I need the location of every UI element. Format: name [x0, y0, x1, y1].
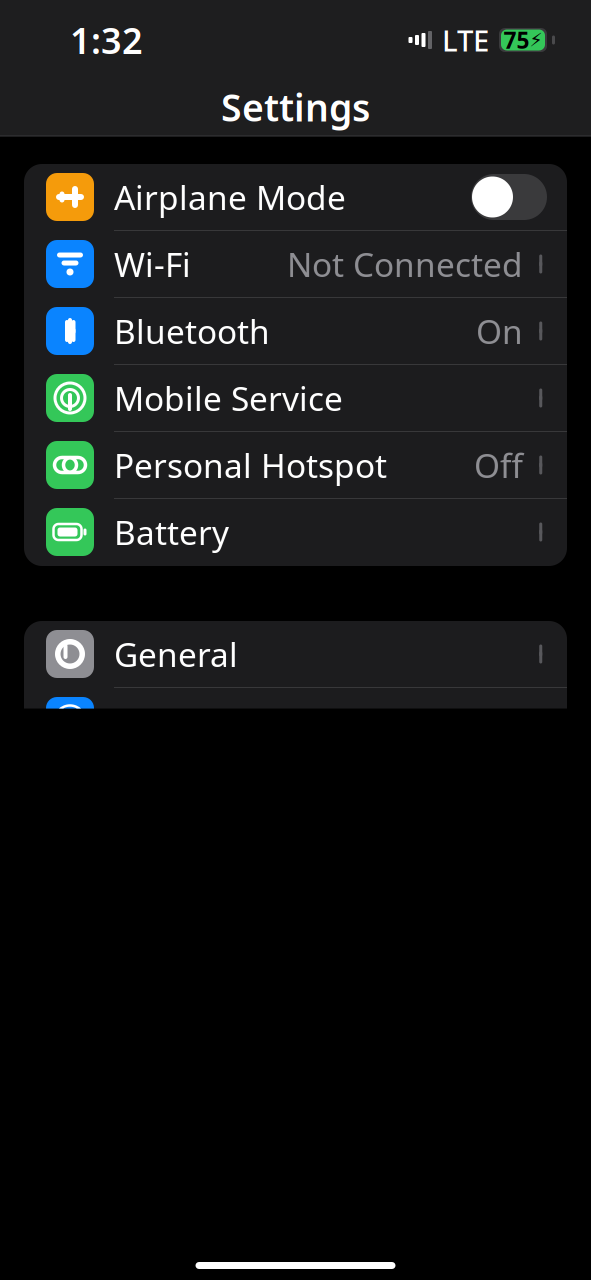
- staticText: LTE: [442, 20, 489, 59]
- button[interactable]: Wallpaper: [24, 1224, 567, 1280]
- staticText: Bluetooth: [114, 309, 270, 353]
- staticText: Off: [474, 443, 523, 487]
- staticText: Mobile Service: [114, 376, 343, 420]
- button[interactable]: Airplane Mode: [24, 164, 567, 231]
- button[interactable]: Personal Hotspot: [24, 432, 567, 499]
- button[interactable]: Wi-Fi: [24, 231, 567, 298]
- staticText: Airplane Mode: [114, 175, 346, 219]
- staticText: General: [114, 632, 238, 676]
- button[interactable]: Mobile Service: [24, 365, 567, 432]
- staticText: Wi-Fi: [114, 242, 191, 286]
- staticText: 1:32: [70, 16, 143, 64]
- staticText: Accessibility: [114, 699, 304, 743]
- staticText: On: [476, 309, 523, 353]
- button[interactable]: Accessibility: [24, 688, 567, 755]
- staticText: Wallpaper: [114, 1235, 275, 1279]
- staticText: Personal Hotspot: [114, 443, 387, 487]
- button[interactable]: Airplane Mode: [471, 174, 547, 220]
- staticText: 75: [503, 25, 529, 55]
- button[interactable]: Battery: [24, 499, 567, 566]
- staticText: Settings: [221, 82, 370, 132]
- staticText: Battery: [114, 510, 229, 554]
- button[interactable]: General: [24, 621, 567, 688]
- staticText: Not Connected: [287, 242, 523, 286]
- button[interactable]: Bluetooth: [24, 298, 567, 365]
- staticText: ⚡︎: [529, 29, 542, 51]
